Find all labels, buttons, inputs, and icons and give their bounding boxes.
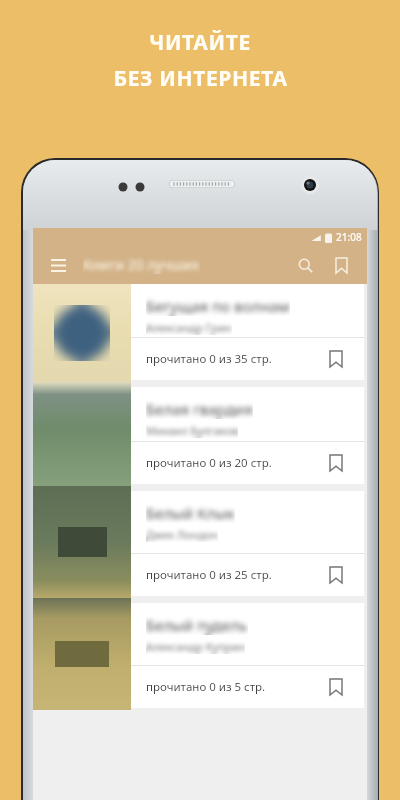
staticText: Александр Грин: [146, 320, 232, 335]
staticText: БЕЗ ИНТЕРНЕТА: [113, 64, 288, 93]
button[interactable]: Белая гвардия: [33, 382, 367, 486]
staticText: Белая гвардия: [146, 399, 253, 419]
staticText: прочитано 0 из 25 стр.: [146, 567, 272, 583]
staticText: 21:08: [336, 230, 362, 244]
staticText: прочитано 0 из 35 стр.: [146, 351, 272, 367]
button[interactable]: Bookmarks: [327, 251, 355, 279]
button[interactable]: Белый пудель: [33, 598, 367, 710]
staticText: Бегущая по волнам: [146, 296, 290, 316]
button[interactable]: Menu: [45, 252, 71, 278]
staticText: Александр Куприн: [146, 639, 245, 654]
staticText: прочитано 0 из 5 стр.: [146, 679, 266, 695]
button[interactable]: Бегущая по волнам: [33, 284, 367, 382]
staticText: Белый пудель: [146, 615, 248, 635]
staticText: Книги 20 лучших: [83, 255, 200, 274]
button[interactable]: Search: [291, 251, 319, 279]
button[interactable]: Bookmark: [323, 674, 349, 700]
button[interactable]: Bookmark: [323, 450, 349, 476]
staticText: Белый Клык: [146, 503, 235, 523]
button[interactable]: Белый Клык: [33, 486, 367, 598]
staticText: Джек Лондон: [146, 527, 218, 542]
staticText: ЧИТАЙТЕ: [149, 28, 251, 57]
staticText: Михаил Булгаков: [146, 423, 238, 438]
button[interactable]: Bookmark: [323, 562, 349, 588]
button[interactable]: Bookmark: [323, 346, 349, 372]
staticText: прочитано 0 из 20 стр.: [146, 455, 272, 471]
